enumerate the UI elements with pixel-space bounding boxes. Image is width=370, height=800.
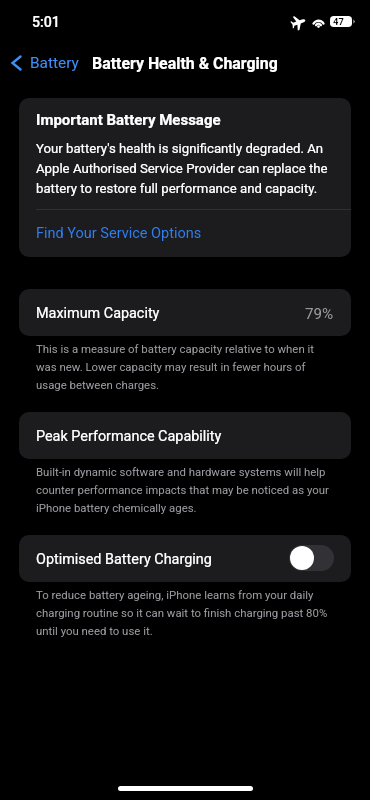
button[interactable]: Maximum Capacity (19, 289, 351, 336)
staticText: Optimised Battery Charging (36, 551, 212, 568)
staticText: Find Your Service Options (36, 225, 202, 242)
staticText: Important Battery Message (36, 111, 221, 129)
staticText: Battery Health & Charging (92, 54, 278, 73)
button[interactable]: Peak Performance Capability (19, 412, 351, 459)
staticText: 5:01 (32, 14, 60, 31)
staticText: 79% (305, 305, 334, 323)
staticText: Peak Performance Capability (36, 428, 222, 445)
button[interactable]: Optimised Battery Charging (289, 545, 334, 571)
staticText: Built-in dynamic software and hardware s… (36, 462, 337, 516)
staticText: Battery (30, 54, 79, 72)
staticText: Maximum Capacity (36, 305, 160, 322)
staticText: This is a measure of battery capacity re… (36, 339, 337, 393)
staticText: To reduce battery ageing, iPhone learns … (36, 585, 337, 639)
other: Wi-Fi (312, 17, 325, 27)
staticText: 47 (333, 16, 344, 27)
button[interactable]: Find Your Service Options (19, 210, 351, 257)
other: Battery 47 percent (330, 16, 356, 27)
other: Aeroplane mode (291, 15, 306, 30)
button[interactable]: Battery (5, 51, 87, 75)
staticText: Your battery's health is significantly d… (36, 137, 337, 197)
